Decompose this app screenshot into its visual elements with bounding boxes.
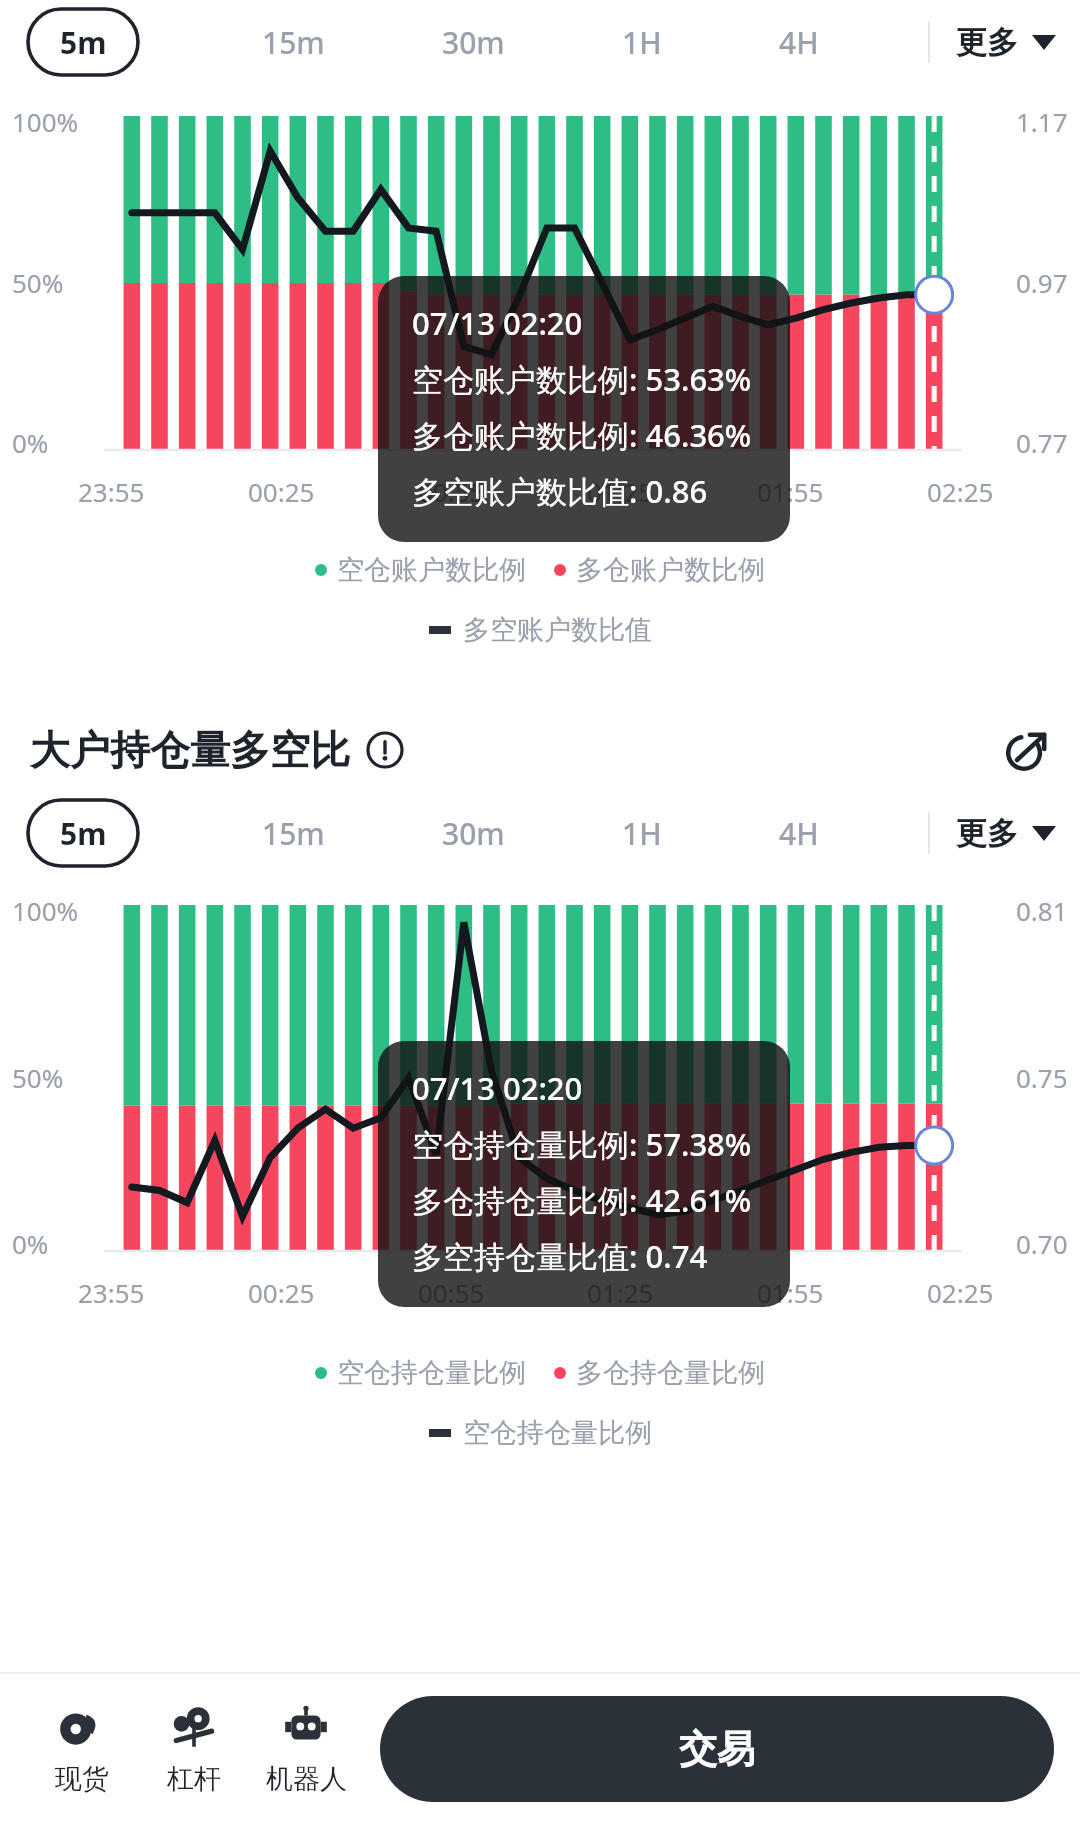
button[interactable]: 30m [434,805,513,862]
staticText: 100% [12,104,79,139]
staticText: 5m [60,813,107,854]
button[interactable]: 30m [434,14,513,71]
staticText: 00:55 [418,1275,485,1310]
staticText: 空仓账户数比例 [337,553,526,587]
staticText: 大户持仓量多空比 [30,725,350,775]
staticText: 07/13 02:20 [412,1067,583,1109]
staticText: 现货 [55,1762,109,1796]
staticText: 00:25 [248,474,315,509]
staticText: 多仓账户数比例: 46.36% [412,414,752,456]
staticText: 0.81 [1016,893,1068,928]
button[interactable]: 现货 [26,1694,138,1804]
button[interactable]: 交易 [380,1696,1054,1802]
button[interactable]: 15m [254,805,333,862]
button[interactable]: 5m [28,9,138,75]
button[interactable]: 15m [254,14,333,71]
button[interactable]: Share [1002,726,1050,774]
staticText: 空仓持仓量比例: 57.38% [412,1123,752,1165]
button[interactable]: 4H [771,805,827,862]
staticText: 空仓账户数比例: 53.63% [412,358,752,400]
staticText: 交易 [679,1725,755,1773]
staticText: 0.77 [1016,425,1068,460]
staticText: 50% [12,1060,64,1095]
staticText: 23:55 [78,474,145,509]
button[interactable]: 更多 [956,806,1056,861]
staticText: 23:55 [78,1275,145,1310]
staticText: 00:25 [248,1275,315,1310]
staticText: 多仓持仓量比例: 42.61% [412,1179,752,1221]
staticText: 空仓持仓量比例 [337,1356,526,1390]
staticText: 0.70 [1016,1226,1068,1261]
staticText: 07/13 02:20 [412,302,583,344]
button[interactable]: 5m [28,800,138,866]
button[interactable]: 4H [771,14,827,71]
staticText: 01:55 [757,474,824,509]
button[interactable]: 机器人 [250,1694,362,1804]
staticText: 01:55 [757,1275,824,1310]
staticText: 0% [12,425,49,460]
staticText: 02:25 [927,474,994,509]
staticText: 00:55 [418,474,485,509]
staticText: 多仓持仓量比例 [576,1356,765,1390]
staticText: 0% [12,1226,49,1261]
staticText: 多空账户数比值 [463,613,652,647]
staticText: 01:25 [587,1275,654,1310]
staticText: 多仓账户数比例 [576,553,765,587]
staticText: 02:25 [927,1275,994,1310]
staticText: 多空持仓量比值: 0.74 [412,1235,708,1277]
staticText: 杠杆 [167,1762,221,1796]
button[interactable]: Info [366,731,404,769]
staticText: 空仓持仓量比例 [463,1416,652,1450]
staticText: 5m [60,22,107,63]
staticText: 01:25 [587,474,654,509]
staticText: 50% [12,265,64,300]
staticText: 更多 [956,23,1018,62]
button[interactable]: 更多 [956,15,1056,70]
staticText: 1.17 [1016,104,1068,139]
button[interactable]: 1H [614,805,670,862]
staticText: 100% [12,893,79,928]
button[interactable]: 1H [614,14,670,71]
staticText: 机器人 [266,1762,347,1796]
staticText: 0.75 [1016,1060,1068,1095]
button[interactable]: 杠杆 [138,1694,250,1804]
staticText: 多空账户数比值: 0.86 [412,470,708,512]
staticText: 0.97 [1016,265,1068,300]
staticText: 更多 [956,814,1018,853]
